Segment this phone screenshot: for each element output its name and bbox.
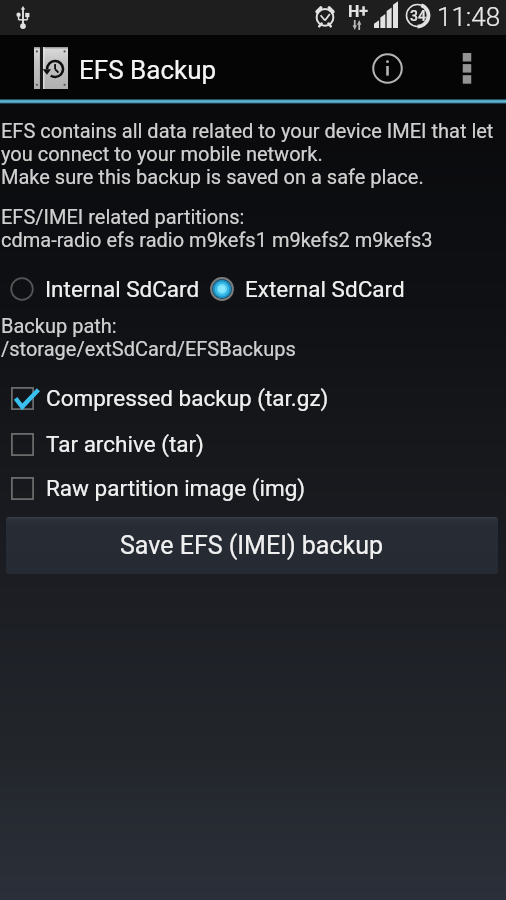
staticText: 11:48 [437, 2, 501, 32]
staticText: EFS Backup [79, 55, 217, 85]
button[interactable]: Raw partition image (img) [0, 471, 506, 505]
staticText: Compressed backup (tar.gz) [46, 385, 329, 411]
button[interactable]: Save EFS (IMEI) backup [6, 517, 498, 574]
staticText: 34 [410, 8, 426, 24]
button[interactable]: Compressed backup (tar.gz) [0, 381, 506, 415]
button[interactable]: More options [430, 36, 504, 100]
button[interactable]: Tar archive (tar) [0, 427, 506, 461]
staticText: Save EFS (IMEI) backup [120, 531, 384, 560]
staticText: H+ [348, 2, 369, 21]
staticText: Tar archive (tar) [46, 431, 204, 457]
staticText: Raw partition image (img) [46, 475, 306, 501]
button[interactable]: Info [355, 36, 420, 100]
staticText: EFS contains all data related to your de… [1, 119, 494, 188]
staticText: EFS/IMEI related partitions: cdma-radio … [1, 205, 433, 251]
button[interactable]: External SdCard [205, 270, 410, 308]
staticText: External SdCard [245, 276, 405, 302]
button[interactable]: Internal SdCard [5, 270, 205, 308]
staticText: Internal SdCard [45, 276, 200, 302]
staticText: Backup path: /storage/extSdCard/EFSBacku… [1, 314, 296, 360]
